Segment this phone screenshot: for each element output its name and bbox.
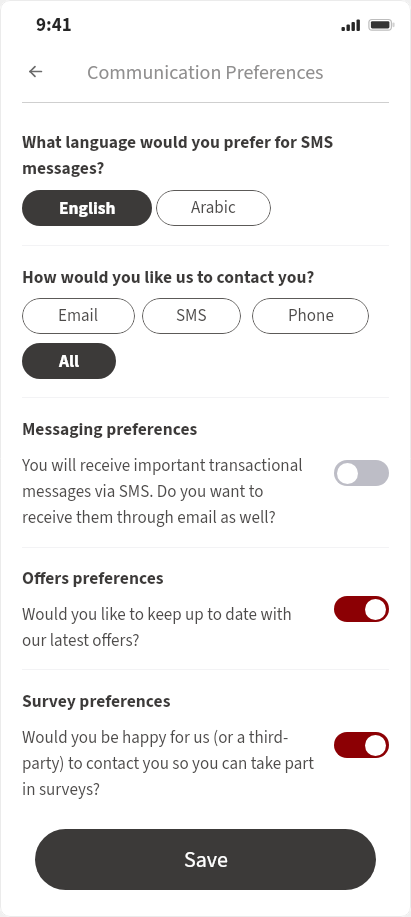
staticText: Email [58, 304, 99, 328]
staticText: Arabic [191, 196, 236, 220]
staticText: All [59, 349, 80, 374]
button[interactable]: Arabic [156, 190, 271, 226]
staticText: You will receive important transactional… [22, 452, 315, 530]
button[interactable]: All [22, 343, 116, 379]
staticText: Messaging preferences [22, 416, 198, 442]
button[interactable]: Back [13, 51, 58, 91]
button[interactable]: Switch off [334, 460, 389, 486]
button[interactable]: Email [22, 298, 135, 334]
button[interactable]: Save [35, 829, 376, 890]
staticText: Phone [288, 304, 334, 328]
button[interactable]: English [22, 190, 152, 226]
staticText: English [59, 196, 116, 221]
staticText: Would you be happy for us (or a third-pa… [22, 724, 315, 802]
staticText: What language would you prefer for SMS m… [22, 129, 389, 181]
staticText: 9:41 [36, 12, 72, 39]
staticText: Would you like to keep up to date with o… [22, 601, 315, 653]
button[interactable]: Switch on [334, 596, 389, 622]
button[interactable]: SMS [142, 298, 241, 334]
button[interactable]: Switch on [334, 732, 389, 758]
staticText: Offers preferences [22, 565, 164, 591]
staticText: Communication Preferences [87, 59, 324, 87]
staticText: SMS [176, 304, 207, 328]
button[interactable]: Phone [252, 298, 369, 334]
staticText: How would you like us to contact you? [22, 264, 315, 290]
staticText: Save [184, 844, 228, 875]
staticText: Survey preferences [22, 688, 171, 714]
